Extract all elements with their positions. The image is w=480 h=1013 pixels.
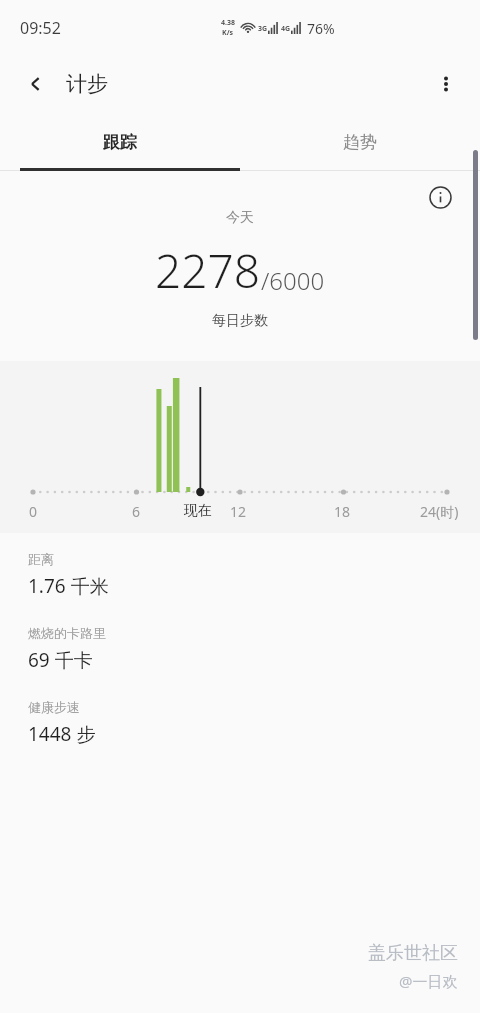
staticText: 6 [132, 502, 141, 521]
staticText: 69 千卡 [28, 647, 93, 673]
button[interactable]: 燃烧的卡路里 [28, 625, 480, 673]
button[interactable]: Back [14, 62, 58, 106]
staticText: 计步 [66, 71, 108, 97]
staticText: 距离 [28, 551, 54, 567]
staticText: 2278 [155, 239, 261, 302]
staticText: 4G [281, 24, 291, 34]
staticText: 每日步数 [212, 312, 268, 330]
staticText: /6000 [261, 264, 325, 297]
staticText: 健康步速 [28, 699, 80, 715]
staticText: 1448 步 [28, 721, 96, 747]
staticText: 现在 [184, 502, 212, 520]
button[interactable]: 趋势 [240, 113, 480, 171]
staticText: 09:52 [20, 17, 61, 39]
staticText: 3G [258, 24, 268, 34]
staticText: 24(时) [420, 502, 459, 521]
staticText: 0 [29, 502, 38, 521]
button[interactable]: 健康步速 [28, 699, 480, 747]
staticText: 今天 [226, 209, 254, 227]
staticText: 跟踪 [103, 132, 137, 153]
staticText: 4.38 [221, 18, 235, 28]
staticText: 12 [230, 502, 247, 521]
staticText: 18 [334, 502, 351, 521]
button[interactable]: 距离 [28, 551, 480, 599]
staticText: 76% [307, 19, 335, 38]
staticText: 趋势 [343, 132, 377, 153]
staticText: 盖乐世社区 [368, 942, 458, 965]
staticText: @一日欢 [399, 971, 458, 991]
button[interactable]: More options [424, 62, 468, 106]
button[interactable]: Information [422, 179, 458, 215]
staticText: 燃烧的卡路里 [28, 625, 106, 641]
staticText: K/s [222, 28, 234, 38]
staticText: 1.76 千米 [28, 573, 109, 599]
button[interactable]: 跟踪 [0, 113, 240, 171]
